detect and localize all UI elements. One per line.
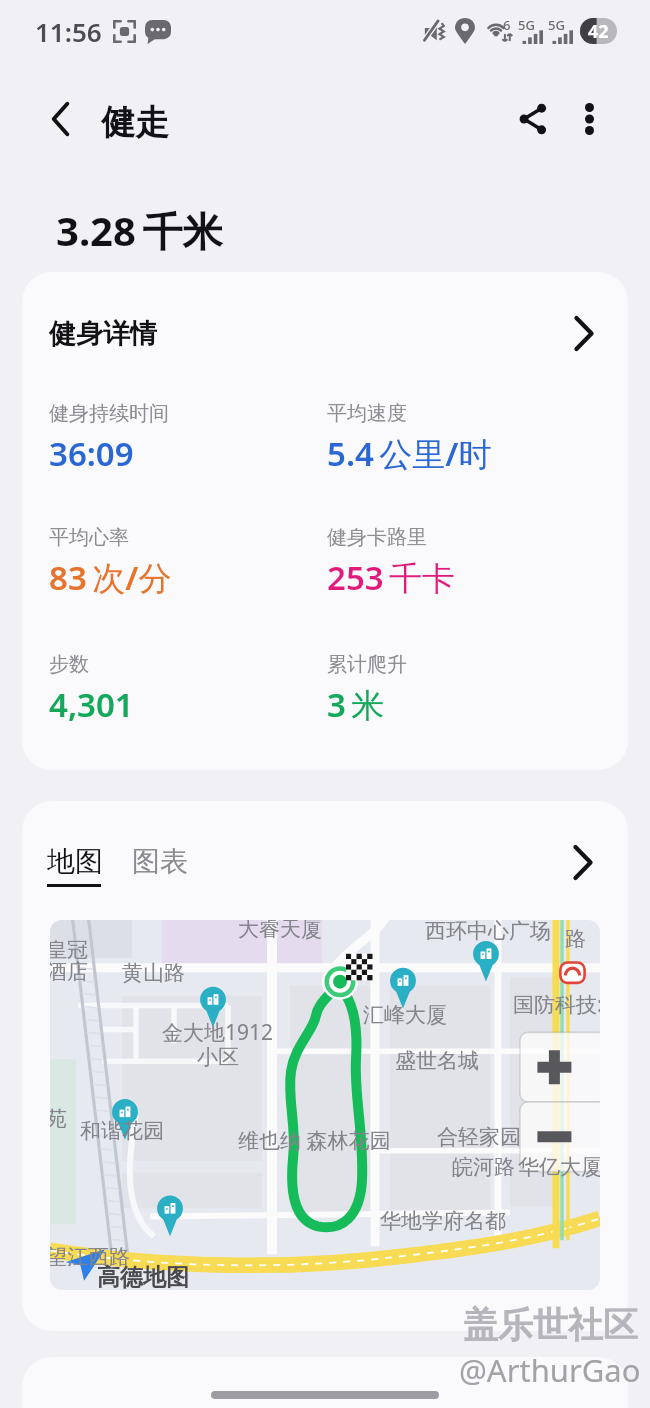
staticText: 大睿天厦 <box>238 920 322 942</box>
staticText: 合轻家园 <box>437 1124 521 1150</box>
staticText: 3 米 <box>327 682 385 727</box>
staticText: 盖乐世社区 <box>463 1303 638 1347</box>
staticText: 华亿大厦 <box>518 1154 600 1180</box>
staticText: 汇峰大厦 <box>363 1002 447 1028</box>
staticText: 健身卡路里 <box>327 525 427 550</box>
staticText: 金大地1912 <box>162 1018 274 1047</box>
staticText: 地图 <box>47 844 103 879</box>
staticText: 6 <box>503 16 511 34</box>
button[interactable]: 地图 <box>47 844 103 887</box>
staticText: 皖河路 <box>452 1154 515 1180</box>
staticText: 平均速度 <box>327 401 407 426</box>
staticText: 5G <box>548 16 565 34</box>
staticText: 83 次/分 <box>49 555 172 600</box>
staticText: 盛世名城 <box>395 1048 479 1074</box>
staticText: 小区 <box>197 1044 239 1070</box>
staticText: 路 <box>565 926 586 952</box>
staticText: 平均心率 <box>49 525 129 550</box>
button[interactable]: Share <box>505 92 561 146</box>
staticText: 步数 <box>49 652 89 677</box>
staticText: 42 <box>588 19 609 44</box>
staticText: 皇冠 <box>50 937 88 963</box>
staticText: 高德地图 <box>97 1263 189 1290</box>
staticText: 苑 <box>50 1106 67 1132</box>
staticText: 华地学府名都 <box>380 1208 506 1234</box>
staticText: 国防科技: <box>513 990 600 1019</box>
button[interactable]: More options <box>564 92 614 146</box>
staticText: 酒店 <box>50 959 88 985</box>
staticText: 5G <box>518 16 535 34</box>
staticText: 图表 <box>132 844 188 879</box>
button[interactable]: 图表 <box>132 844 188 879</box>
button[interactable]: 健身详情 <box>22 272 628 382</box>
staticText: 3.28 千米 <box>56 203 223 258</box>
staticText: 健身持续时间 <box>49 401 169 426</box>
staticText: 西环中心广场 <box>425 920 551 944</box>
staticText: 5.4 公里/时 <box>327 431 492 476</box>
staticText: 253 千卡 <box>327 555 456 600</box>
staticText: 累计爬升 <box>327 652 407 677</box>
staticText: 黄山路 <box>122 960 185 986</box>
staticText: 36:09 <box>49 431 134 476</box>
staticText: @ArthurGao <box>459 1349 641 1391</box>
staticText: 和谐花园 <box>80 1118 164 1144</box>
button[interactable]: Back <box>28 92 92 146</box>
staticText: 11:56 <box>35 14 102 49</box>
staticText: 健身详情 <box>49 317 157 351</box>
staticText: 望江西路 <box>50 1244 130 1270</box>
staticText: 4,301 <box>49 682 134 727</box>
staticText: 维也纳 森林花园 <box>238 1126 391 1155</box>
button[interactable]: Route map <box>50 920 600 1290</box>
staticText: 健走 <box>101 101 169 144</box>
